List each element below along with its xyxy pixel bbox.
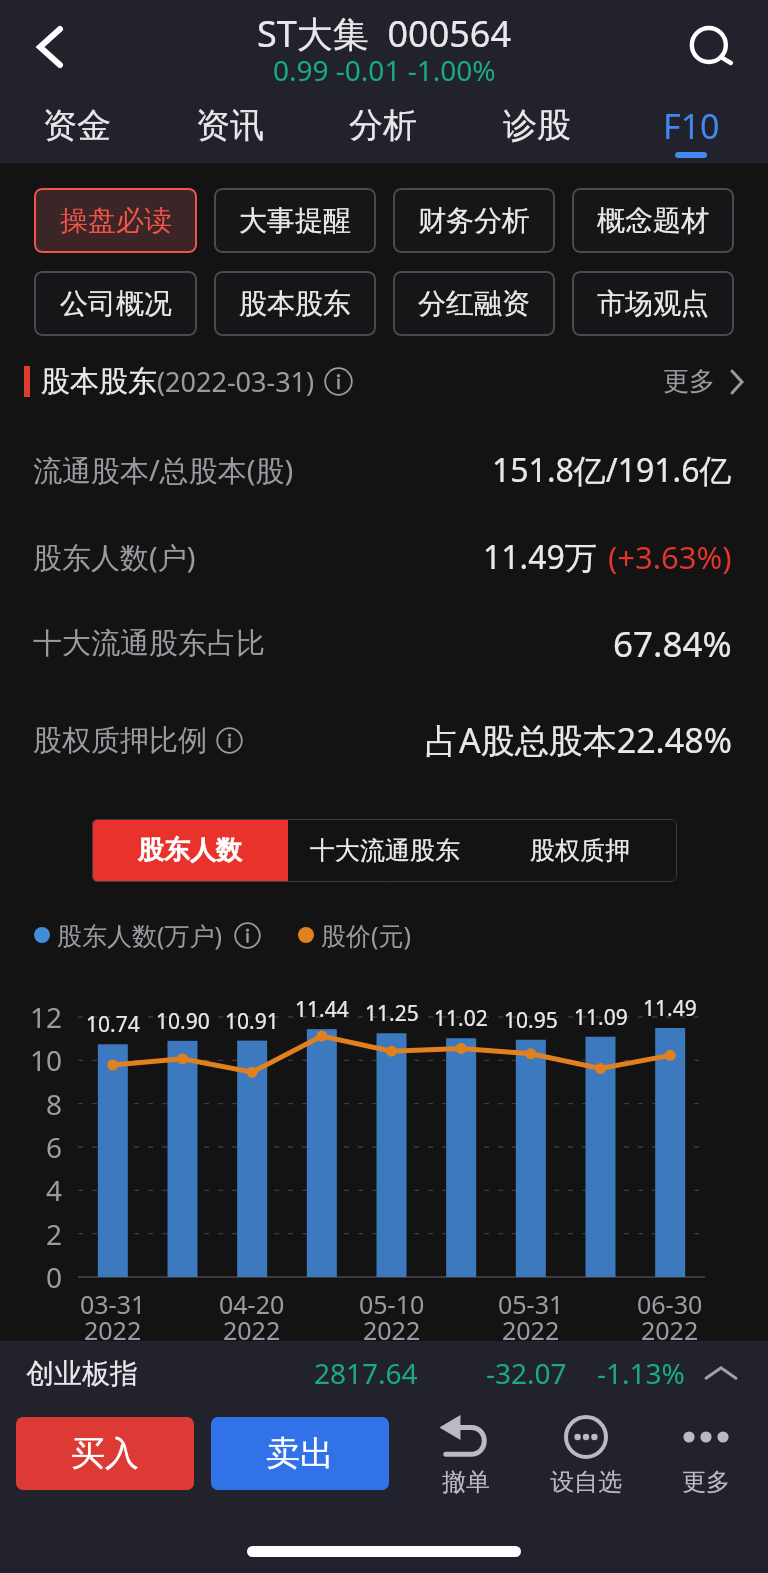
button[interactable]: 撤单 bbox=[406, 1413, 526, 1503]
button[interactable]: 买入 bbox=[16, 1417, 194, 1490]
staticText: 流通股本/总股本(股) bbox=[33, 450, 294, 490]
staticText: 股本股东 bbox=[239, 286, 351, 321]
staticText: 2022 bbox=[502, 1313, 560, 1347]
staticText: 151.8亿/191.6亿 bbox=[492, 448, 732, 492]
staticText: (+3.63%) bbox=[608, 536, 732, 578]
staticText: 设自选 bbox=[550, 1467, 622, 1497]
staticText: 公司概况 bbox=[60, 286, 172, 321]
staticText: 04-20 bbox=[219, 1287, 285, 1321]
button[interactable]: 股权质押 bbox=[482, 819, 677, 882]
button[interactable]: 创业板指 bbox=[0, 1341, 768, 1405]
staticText: 操盘必读 bbox=[60, 203, 172, 238]
staticText: 10 bbox=[30, 1041, 63, 1079]
button[interactable]: 更多 bbox=[646, 1413, 766, 1503]
staticText: 2817.64 bbox=[314, 1354, 418, 1392]
staticText: 03-31 bbox=[80, 1287, 146, 1321]
button[interactable]: 股权质押比例 bbox=[33, 687, 732, 793]
staticText: 6 bbox=[46, 1128, 63, 1166]
button[interactable]: 资讯 bbox=[153, 98, 306, 163]
button[interactable]: 流通股本/总股本(股) bbox=[33, 427, 732, 513]
staticText: 资讯 bbox=[196, 104, 264, 147]
staticText: 10.95 bbox=[504, 1006, 558, 1035]
button[interactable]: 分红融资 bbox=[393, 271, 555, 336]
button[interactable]: 十大流通股东占比 bbox=[33, 600, 732, 687]
staticText: 11.49 bbox=[643, 994, 697, 1023]
staticText: 0.99 -0.01 -1.00% bbox=[273, 51, 496, 85]
staticText: 10.90 bbox=[156, 1007, 210, 1036]
staticText: 2022 bbox=[641, 1313, 699, 1347]
staticText: 股东人数(户) bbox=[33, 537, 196, 577]
staticText: ST大集 000564 bbox=[257, 9, 512, 55]
staticText: 2 bbox=[46, 1215, 63, 1253]
staticText: 市场观点 bbox=[597, 286, 709, 321]
button[interactable]: 操盘必读 bbox=[34, 188, 197, 253]
staticText: 11.25 bbox=[365, 999, 419, 1028]
staticText: 11.09 bbox=[574, 1003, 628, 1032]
staticText: 更多 bbox=[663, 365, 715, 398]
button[interactable]: 市场观点 bbox=[572, 271, 734, 336]
staticText: 股权质押比例 bbox=[33, 722, 207, 759]
staticText: 2022 bbox=[363, 1313, 421, 1347]
staticText: 撤单 bbox=[442, 1467, 490, 1497]
staticText: 0 bbox=[46, 1258, 63, 1296]
button[interactable]: 概念题材 bbox=[572, 188, 734, 253]
button[interactable]: 财务分析 bbox=[393, 188, 555, 253]
staticText: 创业板指 bbox=[26, 1356, 138, 1391]
staticText: 11.02 bbox=[434, 1004, 488, 1033]
staticText: 10.91 bbox=[225, 1007, 279, 1036]
button[interactable]: 诊股 bbox=[460, 98, 614, 163]
button[interactable]: F10 bbox=[614, 98, 768, 163]
staticText: 股权质押 bbox=[530, 835, 630, 866]
staticText: 资金 bbox=[43, 104, 111, 147]
staticText: 分红融资 bbox=[418, 286, 530, 321]
staticText: 分析 bbox=[349, 104, 417, 147]
button[interactable]: 更多 bbox=[663, 357, 744, 406]
staticText: 股价(元) bbox=[321, 918, 412, 952]
staticText: 67.84% bbox=[613, 620, 732, 668]
staticText: -32.07 bbox=[486, 1354, 567, 1392]
button[interactable]: 设自选 bbox=[526, 1413, 646, 1503]
button[interactable]: 大事提醒 bbox=[214, 188, 376, 253]
staticText: 10.74 bbox=[86, 1010, 140, 1039]
button[interactable]: 十大流通股东 bbox=[288, 819, 482, 882]
staticText: 诊股 bbox=[503, 104, 571, 147]
staticText: 2022 bbox=[84, 1313, 142, 1347]
staticText: 更多 bbox=[682, 1467, 730, 1497]
staticText: 8 bbox=[46, 1085, 63, 1123]
button[interactable]: 公司概况 bbox=[34, 271, 197, 336]
staticText: 05-10 bbox=[359, 1287, 425, 1321]
staticText: 卖出 bbox=[266, 1432, 334, 1475]
staticText: 占A股总股本22.48% bbox=[425, 717, 732, 763]
button[interactable]: Back bbox=[0, 3, 100, 91]
staticText: 十大流通股东占比 bbox=[33, 625, 265, 662]
button[interactable]: 股本股东 bbox=[214, 271, 376, 336]
staticText: 11.49万 bbox=[483, 535, 597, 579]
staticText: 概念题材 bbox=[597, 203, 709, 238]
staticText: 06-30 bbox=[637, 1287, 703, 1321]
staticText: 12 bbox=[30, 998, 63, 1036]
staticText: 4 bbox=[46, 1171, 63, 1209]
button[interactable]: 股东人数(户) bbox=[33, 513, 732, 600]
button[interactable]: 股东人数 bbox=[92, 819, 288, 882]
staticText: 大事提醒 bbox=[239, 203, 351, 238]
staticText: 十大流通股东 bbox=[310, 835, 460, 866]
staticText: 2022 bbox=[223, 1313, 281, 1347]
staticText: 股东人数 bbox=[138, 834, 242, 867]
staticText: (2022-03-31) bbox=[157, 363, 315, 400]
staticText: -1.13% bbox=[597, 1354, 685, 1392]
staticText: 11.44 bbox=[295, 995, 349, 1024]
staticText: F10 bbox=[663, 103, 720, 147]
staticText: 05-31 bbox=[498, 1287, 564, 1321]
button[interactable]: Search bbox=[663, 3, 759, 91]
staticText: 股东人数(万户) bbox=[57, 918, 223, 952]
staticText: 股本股东 bbox=[41, 363, 157, 400]
button[interactable]: 卖出 bbox=[211, 1417, 389, 1490]
button[interactable]: 资金 bbox=[0, 98, 153, 163]
staticText: 买入 bbox=[71, 1432, 139, 1475]
staticText: 财务分析 bbox=[418, 203, 530, 238]
button[interactable]: 分析 bbox=[306, 98, 460, 163]
